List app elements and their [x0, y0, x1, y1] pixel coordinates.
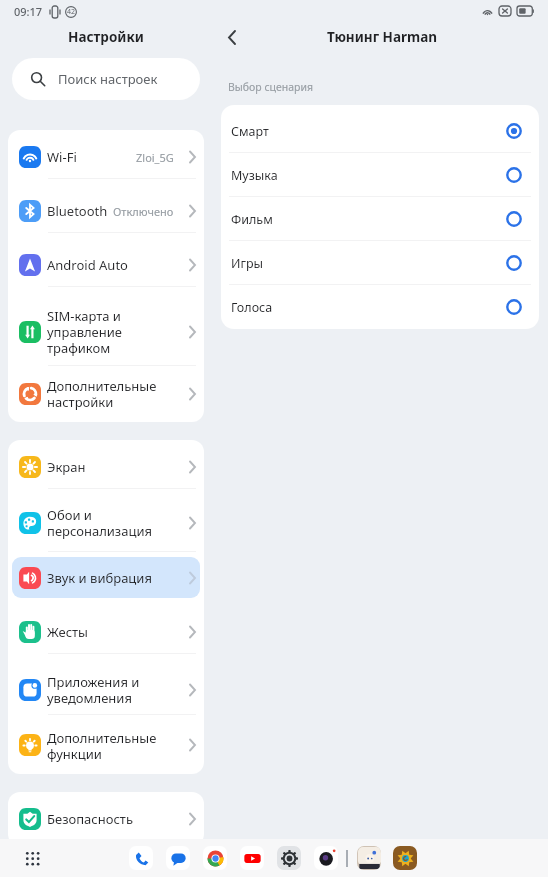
- button[interactable]: Смарт: [221, 109, 539, 153]
- button[interactable]: Звук и вибрация: [12, 557, 200, 598]
- staticText: Bluetooth: [47, 202, 113, 220]
- staticText: Настройки: [68, 28, 144, 46]
- button[interactable]: Messages: [166, 846, 190, 870]
- button[interactable]: All apps: [19, 845, 45, 871]
- button[interactable]: Chrome: [203, 846, 227, 870]
- staticText: Фильм: [231, 211, 506, 228]
- button[interactable]: Жесты: [8, 605, 204, 659]
- button[interactable]: Фильм: [221, 197, 539, 241]
- staticText: 09:17: [14, 4, 43, 19]
- button[interactable]: Camera: [314, 846, 338, 870]
- button[interactable]: Genshin Impact: [357, 846, 381, 870]
- button[interactable]: Hearthstone: [393, 846, 417, 870]
- button[interactable]: Android Auto: [8, 238, 204, 292]
- staticText: Wi-Fi: [47, 148, 136, 166]
- button[interactable]: YouTube: [240, 846, 264, 870]
- staticText: Музыка: [231, 167, 506, 184]
- staticText: Экран: [47, 458, 174, 476]
- button[interactable]: Безопасность: [8, 792, 204, 846]
- staticText: Игры: [231, 255, 506, 272]
- staticText: Выбор сценария: [228, 80, 314, 94]
- button[interactable]: Экран: [8, 440, 204, 494]
- button[interactable]: Bluetooth: [8, 184, 204, 238]
- button[interactable]: Back: [218, 23, 246, 51]
- button[interactable]: Дополнительные настройки: [8, 371, 204, 416]
- staticText: Отключено: [113, 204, 174, 219]
- staticText: Голоса: [231, 299, 506, 316]
- button[interactable]: Голоса: [221, 285, 539, 329]
- button[interactable]: Phone: [129, 846, 153, 870]
- staticText: Приложения и уведомления: [47, 673, 174, 706]
- button[interactable]: SIM-карта и управление трафиком: [8, 292, 204, 371]
- staticText: Безопасность: [47, 810, 174, 828]
- button[interactable]: Музыка: [221, 153, 539, 197]
- staticText: Android Auto: [47, 256, 174, 274]
- staticText: Обои и персонализация: [47, 506, 174, 539]
- button[interactable]: Игры: [221, 241, 539, 285]
- button[interactable]: Дополнительные функции: [8, 720, 204, 770]
- staticText: Тюнинг Harman: [327, 28, 438, 46]
- button[interactable]: Приложения и уведомления: [8, 659, 204, 720]
- staticText: Дополнительные функции: [47, 729, 174, 762]
- button[interactable]: Поиск настроек: [12, 58, 200, 100]
- staticText: Дополнительные настройки: [47, 377, 174, 410]
- staticText: Звук и вибрация: [47, 569, 174, 587]
- staticText: Жесты: [47, 623, 174, 641]
- staticText: Поиск настроек: [58, 70, 158, 88]
- button[interactable]: Обои и персонализация: [8, 494, 204, 551]
- button[interactable]: Wi-Fi: [8, 130, 204, 184]
- staticText: 42: [67, 7, 76, 17]
- staticText: Zloi_5G: [136, 150, 174, 165]
- staticText: Смарт: [231, 123, 506, 140]
- staticText: SIM-карта и управление трафиком: [47, 307, 174, 356]
- button[interactable]: Settings: [277, 846, 301, 870]
